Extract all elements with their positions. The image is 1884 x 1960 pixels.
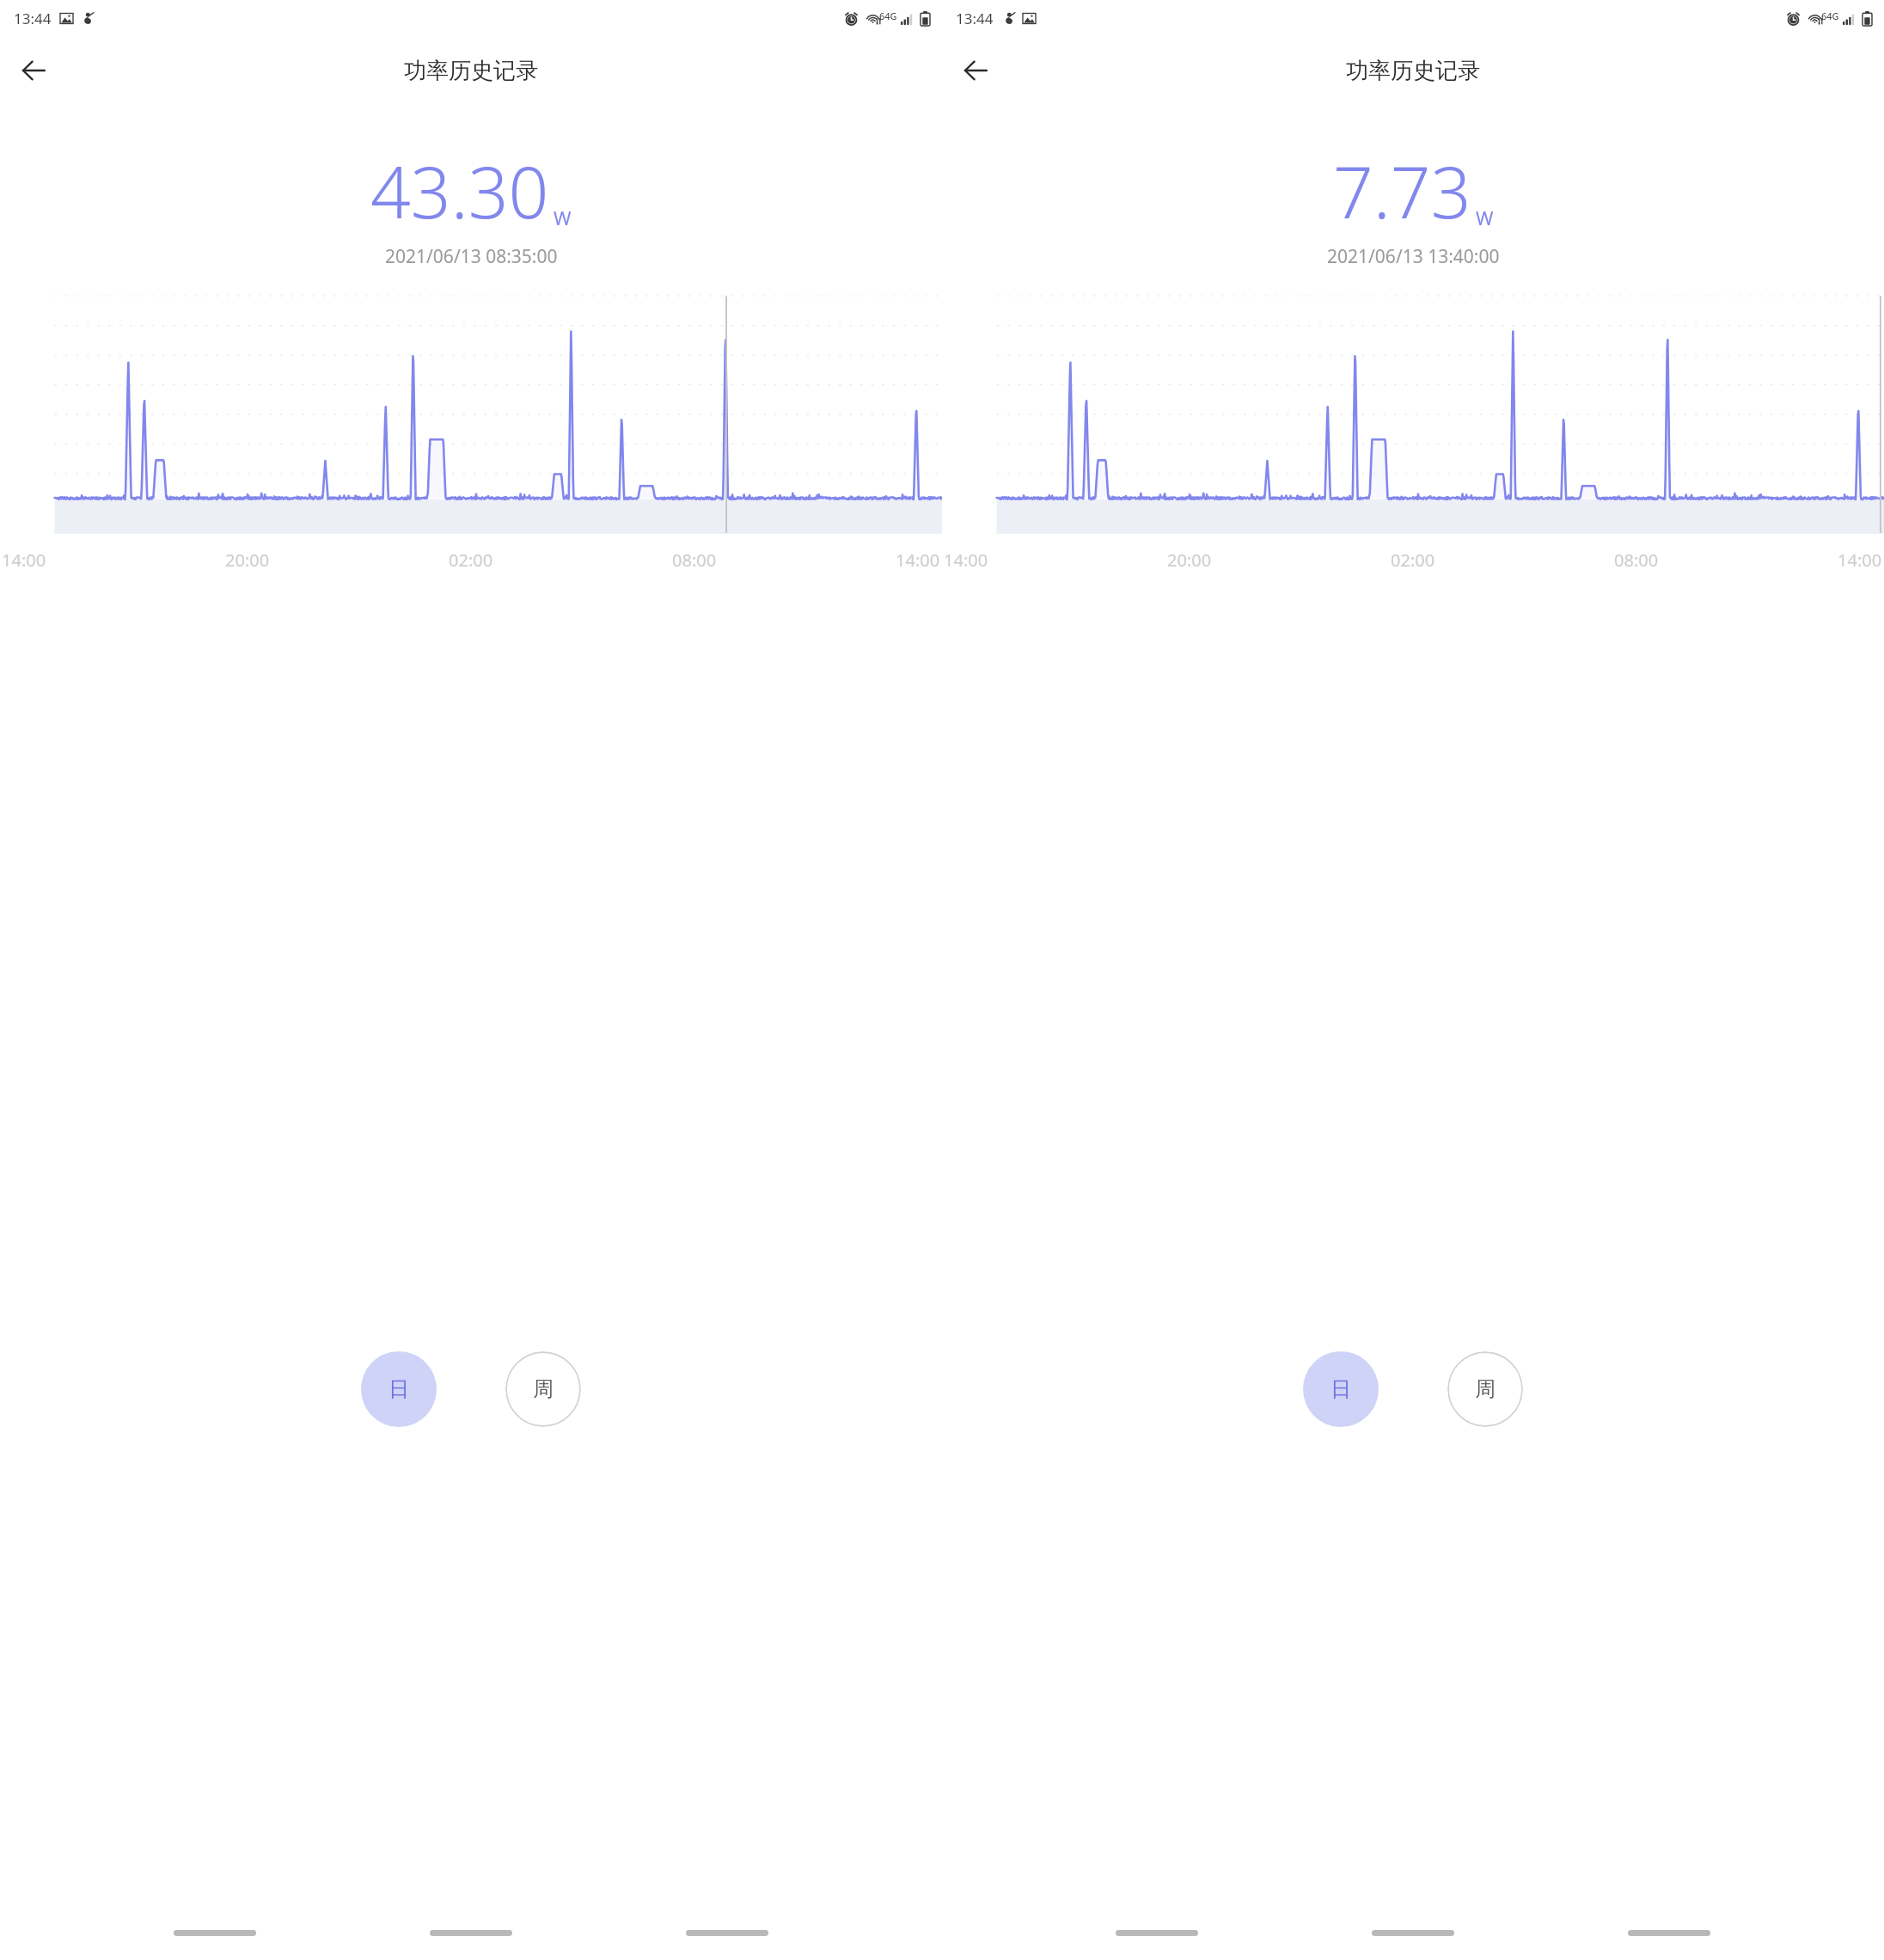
button[interactable]: 周 — [1447, 1351, 1523, 1427]
staticText: 日 — [1330, 1376, 1351, 1402]
staticText: 14:00 — [944, 548, 988, 572]
staticText: 7.73 — [1333, 143, 1471, 239]
staticText: 43.30 — [370, 143, 549, 239]
button[interactable]: Back — [10, 47, 57, 94]
staticText: W — [554, 205, 572, 230]
button[interactable]: Navigation — [1372, 1930, 1454, 1936]
button[interactable]: Navigation — [430, 1930, 512, 1936]
staticText: 2021/06/13 08:35:00 — [385, 244, 558, 269]
button[interactable]: Navigation — [686, 1930, 768, 1936]
staticText: 功率历史记录 — [1346, 57, 1480, 85]
button[interactable]: Navigation — [1628, 1930, 1710, 1936]
staticText: 13:44 — [14, 9, 52, 28]
staticText: 08:00 — [1614, 548, 1659, 572]
staticText: 功率历史记录 — [404, 57, 538, 85]
staticText: 14:00 — [1838, 548, 1882, 572]
button[interactable]: 周 — [505, 1351, 581, 1427]
staticText: 64G — [1821, 9, 1839, 22]
staticText: W — [1476, 205, 1494, 230]
staticText: 64G — [879, 9, 897, 22]
staticText: 13:44 — [956, 9, 994, 28]
button[interactable]: Back — [952, 47, 999, 94]
staticText: 02:00 — [449, 548, 493, 572]
staticText: 2021/06/13 13:40:00 — [1327, 244, 1500, 269]
staticText: 周 — [533, 1376, 554, 1402]
button[interactable]: Navigation — [174, 1930, 256, 1936]
staticText: 日 — [388, 1376, 409, 1402]
staticText: 14:00 — [2, 548, 46, 572]
button[interactable]: 日 — [361, 1351, 437, 1427]
button[interactable]: 日 — [1303, 1351, 1379, 1427]
staticText: 14:00 — [896, 548, 940, 572]
staticText: 20:00 — [225, 548, 270, 572]
staticText: 02:00 — [1391, 548, 1435, 572]
staticText: 08:00 — [672, 548, 717, 572]
staticText: 20:00 — [1167, 548, 1212, 572]
staticText: 周 — [1475, 1376, 1496, 1402]
button[interactable]: Navigation — [1116, 1930, 1198, 1936]
